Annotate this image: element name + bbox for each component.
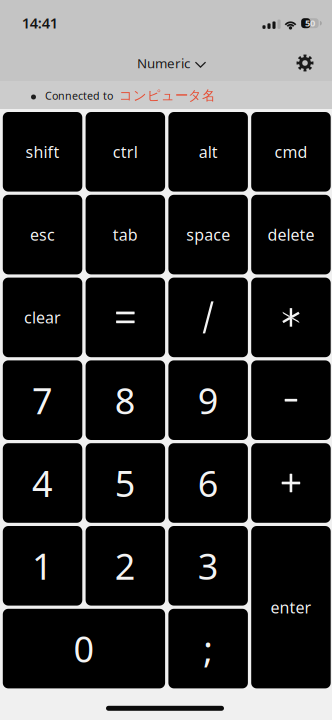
- button[interactable]: 8: [86, 360, 165, 440]
- button[interactable]: asterisk: [251, 278, 331, 357]
- staticText: 4: [32, 459, 53, 507]
- staticText: delete: [267, 224, 314, 245]
- staticText: ctrl: [113, 141, 138, 162]
- button[interactable]: 4: [3, 443, 82, 523]
- button[interactable]: equals: [86, 278, 165, 357]
- button[interactable]: ctrl: [86, 112, 165, 192]
- button[interactable]: 1: [3, 526, 82, 606]
- staticText: esc: [30, 224, 55, 245]
- staticText: 6: [198, 459, 219, 507]
- staticText: Connected to: [45, 88, 113, 103]
- button[interactable]: ;: [168, 609, 248, 688]
- button[interactable]: 2: [86, 526, 165, 606]
- button[interactable]: alt: [168, 112, 248, 192]
- button[interactable]: 6: [168, 443, 248, 523]
- button[interactable]: plus: [251, 443, 331, 523]
- staticText: 2: [115, 542, 136, 590]
- staticText: cmd: [274, 141, 307, 162]
- staticText: 14:41: [22, 13, 58, 33]
- staticText: 50: [305, 17, 315, 29]
- staticText: 5: [115, 459, 136, 507]
- staticText: 9: [198, 376, 219, 424]
- button[interactable]: space: [168, 195, 248, 274]
- button[interactable]: Settings: [289, 47, 320, 78]
- button[interactable]: delete: [251, 195, 331, 274]
- button[interactable]: 7: [3, 360, 82, 440]
- button[interactable]: 0: [3, 609, 165, 688]
- button[interactable]: esc: [3, 195, 82, 274]
- button[interactable]: tab: [86, 195, 165, 274]
- button[interactable]: slash: [168, 278, 248, 357]
- button[interactable]: Numeric: [129, 47, 214, 79]
- staticText: 0: [73, 625, 94, 672]
- button[interactable]: enter: [251, 526, 331, 688]
- button[interactable]: 5: [86, 443, 165, 523]
- staticText: shift: [26, 141, 60, 162]
- staticText: tab: [113, 224, 138, 245]
- staticText: コンピュータ名: [119, 87, 215, 104]
- staticText: 1: [32, 542, 53, 590]
- button[interactable]: clear: [3, 278, 82, 357]
- staticText: 7: [32, 376, 53, 424]
- staticText: ;: [203, 625, 213, 672]
- staticText: 3: [198, 542, 219, 590]
- button[interactable]: minus: [251, 360, 331, 440]
- staticText: Numeric: [137, 54, 190, 72]
- button[interactable]: 9: [168, 360, 248, 440]
- staticText: 8: [115, 376, 136, 424]
- button[interactable]: shift: [3, 112, 82, 192]
- staticText: clear: [24, 307, 61, 328]
- staticText: enter: [270, 597, 311, 618]
- button[interactable]: cmd: [251, 112, 331, 192]
- staticText: space: [186, 224, 230, 245]
- staticText: alt: [199, 141, 218, 162]
- button[interactable]: 3: [168, 526, 248, 606]
